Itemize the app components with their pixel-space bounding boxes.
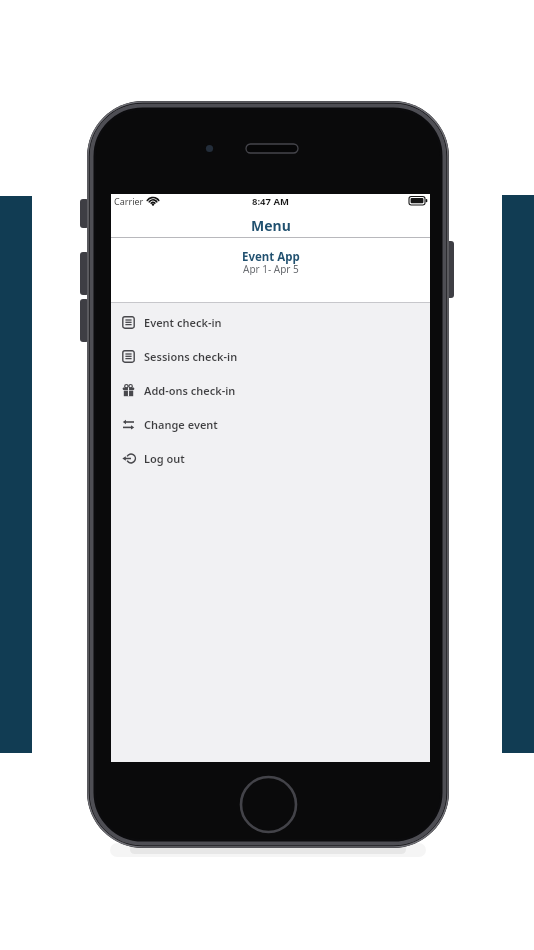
staticText: Event App [242, 249, 300, 264]
button[interactable]: Log out [111, 441, 430, 475]
button[interactable]: Sessions check-in [111, 339, 430, 373]
button[interactable]: Change event [111, 407, 430, 441]
staticText: Log out [144, 451, 185, 466]
staticText: Event check-in [144, 315, 222, 330]
button[interactable]: Event check-in [111, 305, 430, 339]
staticText: Change event [144, 417, 218, 432]
staticText: Menu [251, 216, 291, 235]
staticText: Apr 1- Apr 5 [243, 262, 299, 275]
staticText: 8:47 AM [252, 195, 289, 208]
button[interactable]: Add-ons check-in [111, 373, 430, 407]
staticText: Carrier [114, 195, 144, 207]
staticText: Add-ons check-in [144, 383, 236, 398]
staticText: Sessions check-in [144, 349, 238, 364]
